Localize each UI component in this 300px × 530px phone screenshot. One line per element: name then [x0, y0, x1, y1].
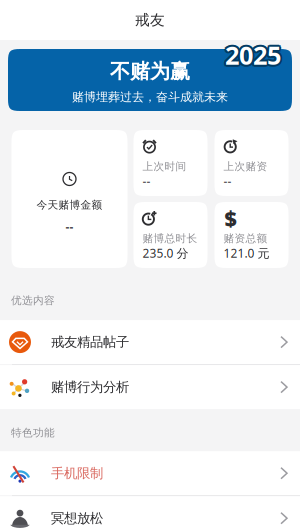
staticText: 235.0 分	[142, 245, 188, 261]
staticText: 2025	[227, 38, 283, 72]
staticText: --	[223, 173, 231, 189]
staticText: 戒友精品帖子	[51, 334, 129, 350]
staticText: 优选内容	[11, 294, 55, 307]
staticText: 2025	[225, 38, 281, 72]
staticText: 不赌为赢	[110, 59, 190, 84]
button[interactable]: 戒友精品帖子	[0, 320, 300, 364]
staticText: 2025	[223, 36, 279, 70]
staticText: 2025	[226, 39, 282, 73]
staticText: 2025	[226, 36, 282, 70]
button[interactable]: 手机限制	[0, 451, 300, 495]
staticText: 冥想放松	[51, 510, 103, 526]
staticText: 2025	[223, 39, 279, 73]
staticText: 2025	[223, 38, 279, 72]
staticText: 特色功能	[11, 426, 55, 439]
staticText: $	[224, 204, 236, 232]
staticText: 121.0 元	[223, 245, 269, 261]
button[interactable]: 冥想放松	[0, 496, 300, 530]
staticText: 赌博总时长	[142, 232, 197, 245]
staticText: 2025	[225, 36, 281, 70]
staticText: 上次赌资	[223, 160, 267, 173]
staticText: 今天赌博金额	[36, 198, 102, 212]
staticText: 赌资总额	[223, 232, 267, 245]
staticText: --	[142, 173, 150, 189]
staticText: 赌博埋葬过去，奋斗成就未来	[72, 90, 228, 104]
staticText: 2025	[225, 40, 281, 74]
staticText: 戒友	[135, 11, 165, 29]
staticText: 赌博行为分析	[51, 379, 129, 395]
button[interactable]: 赌博行为分析	[0, 365, 300, 409]
staticText: 手机限制	[51, 465, 103, 481]
staticText: 上次时间	[142, 160, 186, 173]
staticText: --	[65, 219, 73, 234]
